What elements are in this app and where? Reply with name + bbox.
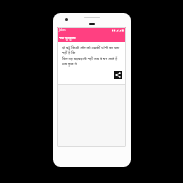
staticText: फिर वह बड़बड़ाती नहीं जब वे घर आते हैं स… [62,56,123,66]
button[interactable]: Share [114,71,122,79]
staticText: दो बहु किसी और को उसकी पत्नी का पता नहीं… [62,45,123,55]
staticText: Jokes [59,28,66,32]
staticText: नया चुटकुला [59,35,76,40]
